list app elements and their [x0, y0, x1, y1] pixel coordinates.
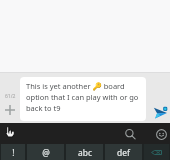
- staticText: !: [12, 147, 15, 158]
- button[interactable]: Attach: [0, 100, 20, 120]
- button[interactable]: def: [105, 144, 142, 160]
- button[interactable]: Backspace: [144, 144, 169, 160]
- staticText: 61/2: [5, 93, 16, 100]
- staticText: def: [117, 147, 130, 158]
- button[interactable]: This is yet another 🔑 board option that …: [20, 77, 146, 121]
- staticText: @: [42, 147, 50, 158]
- button[interactable]: @: [27, 144, 64, 160]
- staticText: abc: [78, 147, 92, 158]
- button[interactable]: Emoji: [152, 125, 170, 144]
- button[interactable]: Search: [121, 125, 140, 144]
- button[interactable]: abc: [66, 144, 103, 160]
- staticText: This is yet another 🔑 board option that …: [26, 81, 146, 113]
- button[interactable]: Send: [147, 101, 170, 123]
- button[interactable]: !: [1, 144, 25, 160]
